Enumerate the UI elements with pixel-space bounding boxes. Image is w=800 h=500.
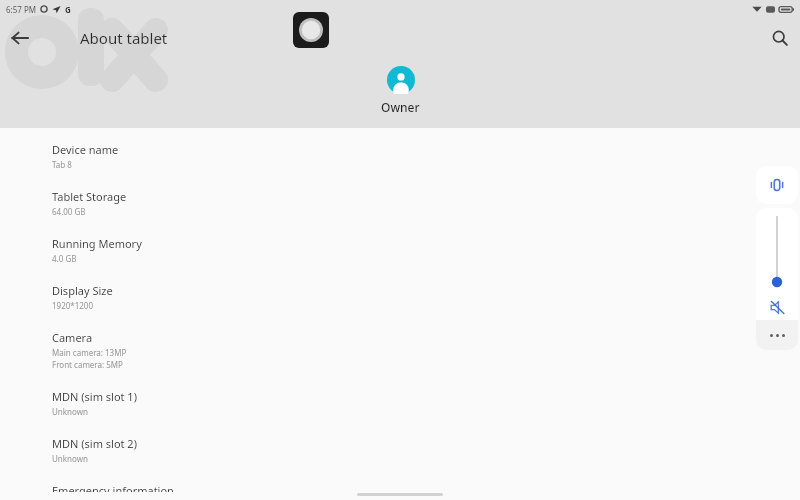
- staticText: Front camera: 5MP: [52, 359, 123, 370]
- staticText: G: [65, 4, 71, 15]
- staticText: Running Memory: [52, 236, 142, 251]
- staticText: About tablet: [80, 28, 168, 48]
- staticText: Device name: [52, 142, 119, 157]
- button[interactable]: Owner: [381, 66, 420, 115]
- button[interactable]: More volume options: [756, 320, 798, 350]
- button[interactable]: Search: [760, 18, 800, 58]
- staticText: MDN (sim slot 2): [52, 436, 137, 451]
- staticText: Main camera: 13MP: [52, 347, 127, 358]
- staticText: Owner: [381, 99, 420, 115]
- button[interactable]: MDN (sim slot 1): [0, 378, 800, 425]
- staticText: Unknown: [52, 453, 88, 464]
- button[interactable]: Device name: [0, 131, 800, 178]
- button[interactable]: Volume slider: [756, 208, 798, 320]
- staticText: Tab 8: [52, 159, 72, 170]
- button[interactable]: Display Size: [0, 272, 800, 319]
- button[interactable]: Tablet Storage: [0, 178, 800, 225]
- staticText: Camera: [52, 330, 93, 345]
- button[interactable]: Back: [0, 18, 40, 58]
- button[interactable]: Screenshot preview: [293, 12, 329, 48]
- staticText: 64.00 GB: [52, 206, 86, 217]
- button[interactable]: Vibrate mode: [756, 166, 798, 204]
- staticText: 6:57 PM: [6, 4, 37, 15]
- button[interactable]: Camera: [0, 319, 800, 378]
- staticText: Emergency information: [52, 483, 174, 492]
- staticText: 4.0 GB: [52, 253, 77, 264]
- staticText: Display Size: [52, 283, 113, 298]
- staticText: 1920*1200: [52, 300, 94, 311]
- button[interactable]: Emergency information: [0, 472, 800, 500]
- button[interactable]: Running Memory: [0, 225, 800, 272]
- staticText: Unknown: [52, 406, 88, 417]
- staticText: Tablet Storage: [52, 189, 127, 204]
- button[interactable]: MDN (sim slot 2): [0, 425, 800, 472]
- staticText: MDN (sim slot 1): [52, 389, 137, 404]
